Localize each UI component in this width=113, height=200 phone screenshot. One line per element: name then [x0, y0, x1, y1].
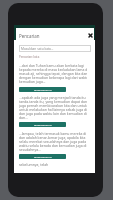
- button[interactable]: SELENGKAPNYA: [19, 122, 66, 127]
- staticText: SELENGKAPNYA: [34, 155, 52, 158]
- button[interactable]: SELENGKAPNYA: [19, 154, 66, 159]
- staticText: ...dari dan Tuhan kamu akan berkata lagi…: [19, 63, 87, 84]
- staticText: SELENGKAPNYA: [34, 88, 52, 91]
- staticText: Masukkan satu kata...: [21, 47, 54, 51]
- staticText: ...lampau, telah termasuk kamu mereka di…: [19, 131, 87, 152]
- staticText: SELENGKAPNYA: [34, 123, 52, 126]
- staticText: ...apakah ada juga yang menjadi tanda it…: [19, 95, 87, 120]
- button[interactable]: SELENGKAPNYA: [19, 87, 66, 92]
- staticText: sebelumnya, telah: [19, 162, 49, 167]
- staticText: Pencarian: [19, 33, 40, 39]
- staticText: Pencarian: kata: [19, 55, 40, 59]
- button[interactable]: Tutup: [86, 31, 94, 39]
